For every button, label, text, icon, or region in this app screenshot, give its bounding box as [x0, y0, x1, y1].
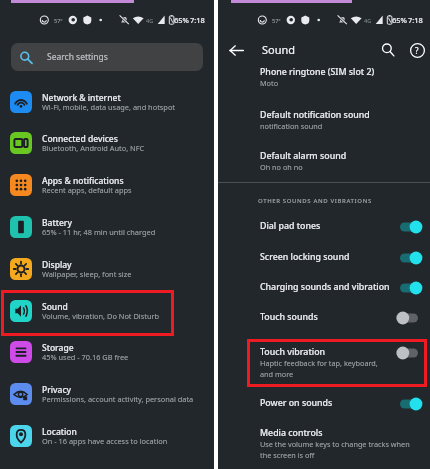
staticText: Touch vibration: [260, 346, 326, 358]
staticText: Apps & notifications: [42, 175, 124, 187]
staticText: Screen locking sound: [260, 251, 350, 263]
staticText: Search settings: [47, 51, 108, 63]
button[interactable]: Back: [220, 34, 252, 66]
staticText: Charging sounds and vibration: [260, 281, 390, 293]
button[interactable]: Default alarm sound: [218, 150, 430, 176]
staticText: Storage: [42, 342, 74, 354]
button[interactable]: On: [398, 281, 424, 295]
staticText: Use the volume keys to change tracks whe…: [260, 439, 430, 460]
button[interactable]: Phone ringtone (SIM slot 2): [218, 66, 430, 92]
button[interactable]: On: [398, 397, 424, 411]
staticText: 45% used - 70.16 GB free: [42, 352, 129, 362]
button[interactable]: Power on sounds: [218, 397, 430, 411]
button[interactable]: Default notification sound: [218, 109, 430, 135]
staticText: On - 16 apps have access to location: [42, 436, 168, 446]
staticText: notification sound: [260, 121, 430, 131]
staticText: OTHER SOUNDS AND VIBRATIONS: [258, 197, 372, 205]
button[interactable]: Connected devices: [0, 132, 214, 155]
staticText: 7:18: [190, 15, 205, 25]
staticText: Media controls: [260, 427, 323, 439]
staticText: Volume, vibration, Do Not Disturb: [42, 311, 160, 321]
staticText: Wallpaper, sleep, font size: [42, 269, 132, 279]
staticText: Default notification sound: [260, 109, 370, 121]
button[interactable]: Search settings: [11, 43, 203, 71]
staticText: 65% - 11 hr, 48 min until charged: [42, 227, 156, 237]
staticText: Privacy: [42, 384, 72, 396]
button[interactable]: Screen locking sound: [218, 251, 430, 265]
staticText: Moto: [260, 78, 430, 88]
staticText: 4G: [364, 17, 372, 24]
staticText: Bluetooth, Android Auto, NFC: [42, 143, 145, 153]
staticText: ?: [415, 45, 419, 56]
button[interactable]: Search: [372, 34, 404, 66]
button[interactable]: Charging sounds and vibration: [218, 281, 430, 295]
button[interactable]: Off: [398, 311, 424, 325]
button[interactable]: Network & internet: [0, 91, 214, 114]
button[interactable]: Touch sounds: [218, 311, 430, 325]
button[interactable]: On: [398, 220, 424, 234]
button[interactable]: Dial pad tones: [218, 220, 430, 234]
button[interactable]: On: [398, 251, 424, 265]
button[interactable]: Off: [398, 346, 424, 360]
button[interactable]: Location: [0, 425, 214, 448]
staticText: Oh no oh no: [260, 162, 430, 172]
button[interactable]: Apps & notifications: [0, 174, 214, 197]
staticText: 65%: [174, 15, 189, 25]
staticText: Default alarm sound: [260, 150, 347, 162]
staticText: Sound: [262, 42, 296, 57]
staticText: Wi-Fi, mobile, data usage, and hotspot: [42, 102, 176, 112]
staticText: Recent apps, default apps: [42, 185, 132, 195]
staticText: 57°: [272, 17, 281, 24]
button[interactable]: Battery: [0, 216, 214, 239]
button[interactable]: Sound: [0, 300, 214, 323]
staticText: Display: [42, 259, 72, 271]
staticText: Haptic feedback for tap, keyboard, and m…: [260, 358, 395, 379]
staticText: Power on sounds: [260, 397, 333, 409]
staticText: Sound: [42, 301, 68, 313]
staticText: Touch sounds: [260, 311, 318, 323]
staticText: 4G: [146, 17, 154, 24]
staticText: Location: [42, 426, 77, 438]
staticText: Battery: [42, 217, 72, 229]
staticText: 65%: [392, 15, 407, 25]
staticText: Network & internet: [42, 92, 121, 104]
staticText: Permissions, account activity, personal …: [42, 394, 194, 404]
button[interactable]: Touch vibration: [218, 346, 430, 376]
button[interactable]: Display: [0, 258, 214, 281]
staticText: Dial pad tones: [260, 220, 321, 232]
button[interactable]: Help: [401, 34, 430, 66]
button[interactable]: Storage: [0, 341, 214, 364]
staticText: Phone ringtone (SIM slot 2): [260, 66, 375, 78]
staticText: 7:18: [408, 15, 423, 25]
staticText: 57°: [54, 17, 63, 24]
staticText: Connected devices: [42, 133, 118, 145]
button[interactable]: Media controls: [218, 427, 430, 453]
button[interactable]: Privacy: [0, 383, 214, 406]
